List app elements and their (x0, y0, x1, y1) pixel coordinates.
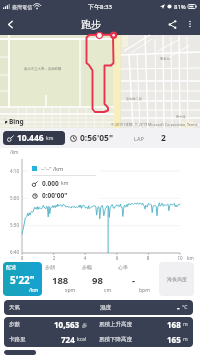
staticText: 5:00 (0, 195, 19, 201)
button[interactable]: 心率 (115, 262, 153, 296)
staticText: 2 (161, 132, 166, 144)
staticText: 0:00'00" (42, 191, 68, 200)
staticText: 心率 (118, 264, 128, 270)
staticText: 168 (167, 319, 181, 330)
staticText: 景平路 (176, 115, 186, 119)
button[interactable]: 卡路里 (4, 332, 193, 347)
staticText: 10,563 (54, 319, 80, 330)
button[interactable]: Back (0, 14, 20, 34)
staticText: 天氣 (9, 304, 20, 311)
staticText: m (183, 336, 188, 343)
staticText: spm (65, 287, 76, 294)
staticText: 81% (174, 3, 186, 11)
staticText: km (187, 255, 194, 260)
staticText: 下午8:33 (88, 3, 112, 11)
staticText: 2 (49, 255, 59, 260)
staticText: --'--" /km (41, 165, 64, 172)
staticText: 臺北市立大學－道路範圍 (24, 67, 62, 71)
staticText: 5'22" (10, 273, 35, 287)
button[interactable]: More options (182, 16, 198, 32)
staticText: 0:56'05" (80, 132, 114, 144)
button[interactable]: 天氣 (4, 300, 193, 315)
button[interactable] (4, 350, 36, 355)
staticText: 10 (175, 255, 185, 260)
staticText: 臺灣電信 (12, 4, 32, 10)
button[interactable]: 步數 (4, 317, 193, 332)
staticText: - (177, 302, 180, 313)
staticText: 188 (52, 274, 69, 287)
staticText: 跑步 (81, 18, 101, 31)
staticText: 累積下降高度 (99, 336, 132, 343)
staticText: cm (104, 287, 112, 294)
staticText: 4 (80, 255, 90, 260)
staticText: © 2019 HERE, © 2019 Microsoft Corporatio… (111, 122, 198, 127)
staticText: /km (29, 287, 39, 294)
button[interactable]: 10.446 (3, 131, 65, 145)
staticText: 濕度 (100, 304, 111, 311)
staticText: 步 (82, 322, 87, 328)
staticText: 6:40 (0, 249, 19, 255)
staticText: 步數 (9, 321, 20, 328)
staticText: 165 (167, 334, 181, 345)
staticText: 景新街 (160, 57, 170, 61)
button[interactable]: Share (163, 15, 182, 34)
button[interactable]: 步頻 (42, 262, 79, 296)
staticText: 卡路里 (9, 336, 26, 343)
staticText: 98 (92, 274, 103, 287)
button[interactable]: 配速 (3, 262, 42, 296)
staticText: Bing (9, 117, 24, 126)
staticText: 10.446 (17, 132, 44, 144)
staticText: 724 (61, 334, 75, 345)
button[interactable]: 步幅 (79, 262, 115, 296)
button[interactable]: 海拔高度 (159, 262, 194, 296)
staticText: 配速 (6, 264, 16, 270)
staticText: 海拔高度 (167, 276, 187, 282)
staticText: m (183, 321, 188, 328)
staticText: 5:50 (0, 222, 19, 228)
staticText: 0 (17, 255, 27, 260)
staticText: km (61, 180, 69, 187)
staticText: /km (10, 149, 19, 155)
staticText: 4:10 (0, 168, 19, 174)
staticText: 8 (143, 255, 153, 260)
staticText: km (46, 135, 54, 142)
staticText: 安和路二段 (126, 97, 142, 101)
staticText: 0.000 (42, 179, 59, 188)
staticText: °C (182, 304, 188, 311)
staticText: bpm (139, 287, 150, 294)
staticText: - (132, 274, 136, 287)
staticText: 步幅 (82, 264, 92, 270)
staticText: 步頻 (45, 264, 55, 270)
staticText: kcal (77, 336, 87, 343)
staticText: LAP (134, 135, 144, 142)
staticText: 6 (112, 255, 122, 260)
staticText: 累積上升高度 (99, 321, 132, 328)
